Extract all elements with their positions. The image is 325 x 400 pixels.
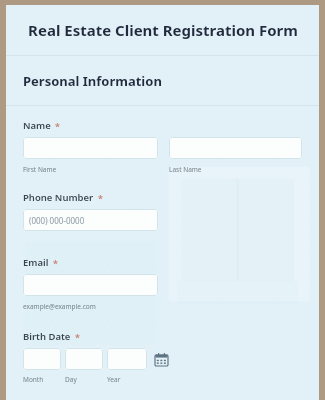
- button[interactable]: [23, 137, 158, 159]
- button[interactable]: [169, 137, 302, 159]
- staticText: Name: [23, 119, 51, 132]
- staticText: *: [98, 192, 103, 204]
- staticText: Email: [23, 256, 49, 269]
- button[interactable]: [23, 348, 61, 370]
- staticText: *: [55, 120, 60, 132]
- staticText: Real Estate Client Registration Form: [28, 20, 298, 40]
- staticText: Phone Number: [23, 191, 94, 204]
- staticText: *: [53, 257, 58, 269]
- staticText: Day: [65, 375, 107, 384]
- button[interactable]: [107, 348, 147, 370]
- staticText: Month: [23, 375, 65, 384]
- button[interactable]: [23, 274, 158, 296]
- button[interactable]: [65, 348, 103, 370]
- staticText: (000) 000-0000: [29, 215, 85, 226]
- staticText: Year: [107, 375, 121, 384]
- staticText: Personal Information: [23, 72, 162, 90]
- staticText: *: [75, 331, 80, 343]
- staticText: example@example.com: [23, 302, 96, 311]
- staticText: Last Name: [169, 165, 202, 174]
- button[interactable]: Open calendar date picker: [151, 349, 171, 369]
- staticText: First Name: [23, 165, 57, 174]
- staticText: Birth Date: [23, 330, 71, 343]
- button[interactable]: (000) 000-0000: [23, 209, 158, 231]
